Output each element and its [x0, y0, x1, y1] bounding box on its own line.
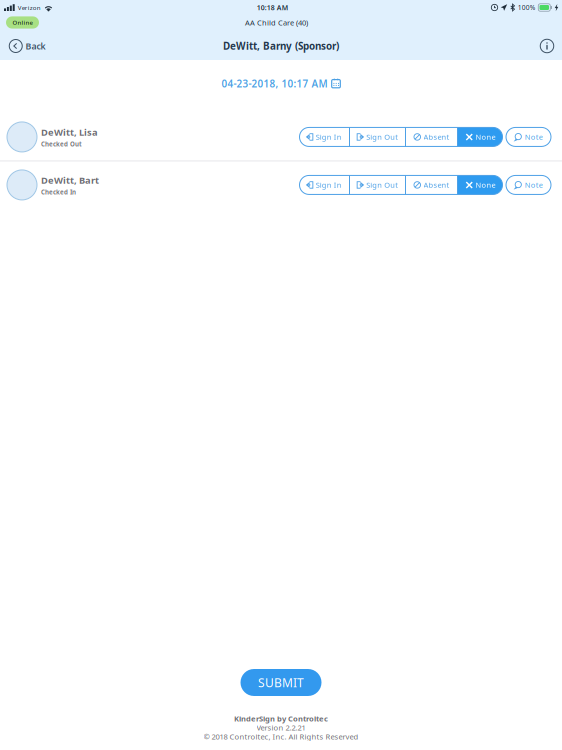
button[interactable]: None: [458, 175, 503, 194]
staticText: Note: [525, 180, 543, 190]
staticText: Checked In: [41, 188, 76, 196]
staticText: Online: [12, 18, 32, 27]
staticText: Version 2.2.21: [256, 722, 305, 733]
staticText: 100%: [518, 3, 536, 12]
button[interactable]: Absent: [406, 127, 457, 146]
staticText: DeWitt, Lisa: [41, 126, 98, 138]
staticText: KinderSign by Controltec: [234, 713, 328, 724]
button[interactable]: Sign In: [299, 127, 349, 146]
staticText: © 2018 Controltec, Inc. All Rights Reser…: [203, 731, 358, 742]
staticText: Absent: [423, 180, 449, 190]
staticText: None: [475, 132, 495, 142]
button[interactable]: Note: [506, 127, 551, 146]
staticText: Verizon: [18, 3, 41, 12]
staticText: Sign In: [316, 180, 342, 190]
staticText: AA Child Care (40): [245, 17, 308, 28]
button[interactable]: SUBMIT: [240, 669, 321, 696]
staticText: None: [475, 180, 495, 190]
button[interactable]: None: [458, 127, 503, 146]
button[interactable]: Note: [506, 175, 551, 194]
staticText: Sign In: [316, 132, 342, 142]
staticText: SUBMIT: [258, 674, 304, 691]
staticText: Absent: [423, 132, 449, 142]
staticText: Sign Out: [366, 132, 398, 142]
staticText: DeWitt, Bart: [41, 174, 99, 186]
button[interactable]: Sign Out: [350, 127, 405, 146]
staticText: 10:18 AM: [257, 3, 288, 12]
button[interactable]: 04-23-2018, 10:17 AM: [221, 70, 340, 97]
staticText: Back: [25, 40, 45, 52]
button[interactable]: Information: [540, 34, 562, 58]
staticText: Sign Out: [366, 180, 398, 190]
button[interactable]: Sign In: [299, 175, 349, 194]
staticText: DeWitt, Barny (Sponsor): [223, 39, 339, 53]
button[interactable]: Back: [0, 34, 45, 58]
staticText: Note: [525, 132, 543, 142]
staticText: 04-23-2018, 10:17 AM: [221, 77, 327, 90]
staticText: Checked Out: [41, 140, 82, 148]
button[interactable]: Sign Out: [350, 175, 405, 194]
button[interactable]: Absent: [406, 175, 457, 194]
